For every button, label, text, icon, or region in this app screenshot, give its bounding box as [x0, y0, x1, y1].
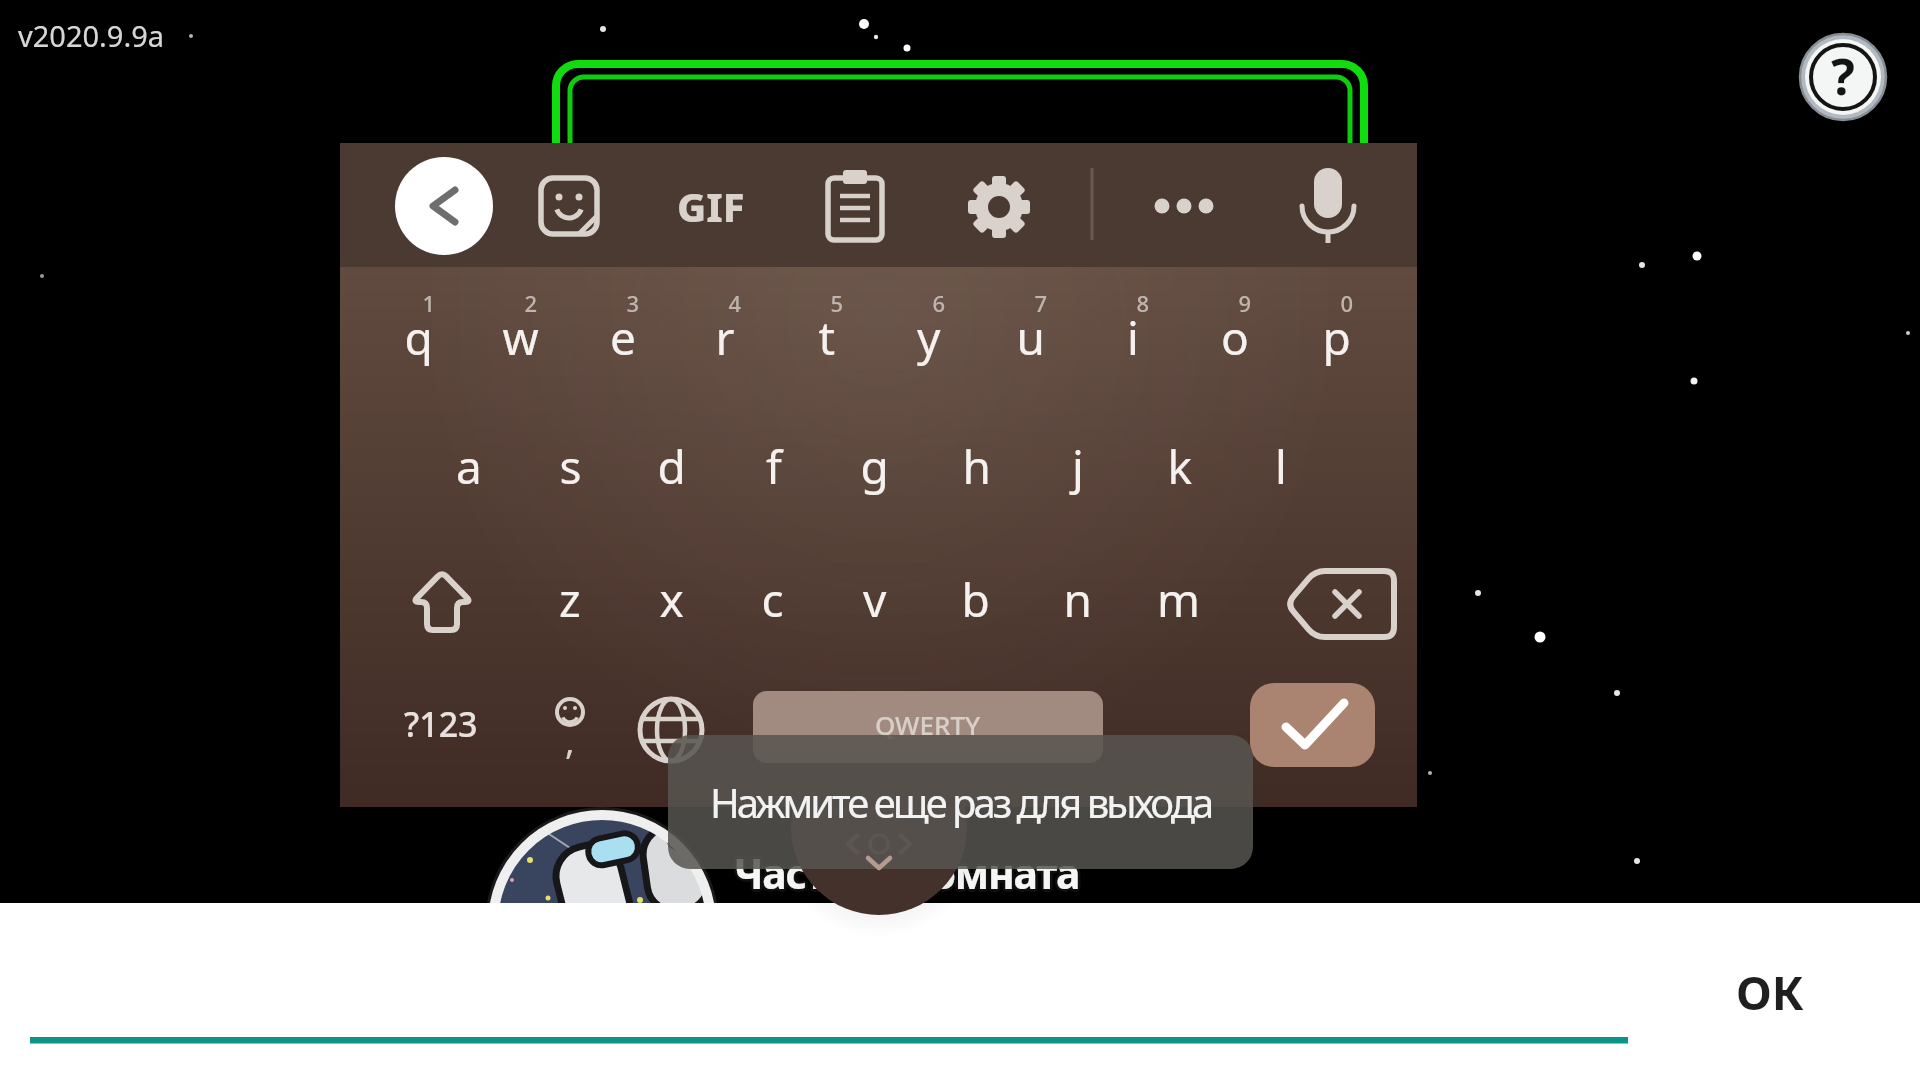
- button[interactable]: [621, 534, 723, 666]
- button[interactable]: [1290, 540, 1392, 665]
- button[interactable]: [926, 402, 1028, 534]
- button[interactable]: [1700, 950, 1860, 1040]
- button[interactable]: [722, 534, 824, 666]
- button[interactable]: [925, 534, 1027, 666]
- button[interactable]: [1129, 402, 1231, 534]
- button[interactable]: [520, 666, 620, 786]
- button[interactable]: [819, 170, 891, 242]
- button[interactable]: [776, 270, 878, 402]
- button[interactable]: [1801, 35, 1885, 119]
- button[interactable]: [418, 402, 520, 534]
- button[interactable]: [963, 170, 1035, 242]
- button[interactable]: [878, 270, 980, 402]
- button[interactable]: [520, 402, 622, 534]
- button[interactable]: [1230, 402, 1332, 534]
- button[interactable]: [391, 666, 491, 786]
- button[interactable]: [572, 270, 674, 402]
- button[interactable]: [723, 402, 825, 534]
- button[interactable]: [395, 157, 493, 255]
- button[interactable]: [1250, 683, 1375, 767]
- button[interactable]: [1292, 166, 1364, 238]
- button[interactable]: [1027, 402, 1129, 534]
- button[interactable]: [368, 270, 470, 402]
- button[interactable]: [1128, 534, 1230, 666]
- button[interactable]: [1286, 270, 1388, 402]
- button[interactable]: [519, 534, 621, 666]
- button[interactable]: [533, 170, 605, 242]
- button[interactable]: [391, 540, 493, 665]
- button[interactable]: [824, 534, 926, 666]
- button[interactable]: [1149, 170, 1221, 242]
- button[interactable]: [470, 270, 572, 402]
- button[interactable]: [675, 170, 747, 242]
- button[interactable]: [621, 666, 721, 786]
- button[interactable]: [1082, 270, 1184, 402]
- button[interactable]: [753, 691, 1103, 757]
- button[interactable]: [980, 270, 1082, 402]
- button[interactable]: [674, 270, 776, 402]
- button[interactable]: [1027, 534, 1129, 666]
- button[interactable]: [621, 402, 723, 534]
- button[interactable]: [1184, 270, 1286, 402]
- button[interactable]: [824, 402, 926, 534]
